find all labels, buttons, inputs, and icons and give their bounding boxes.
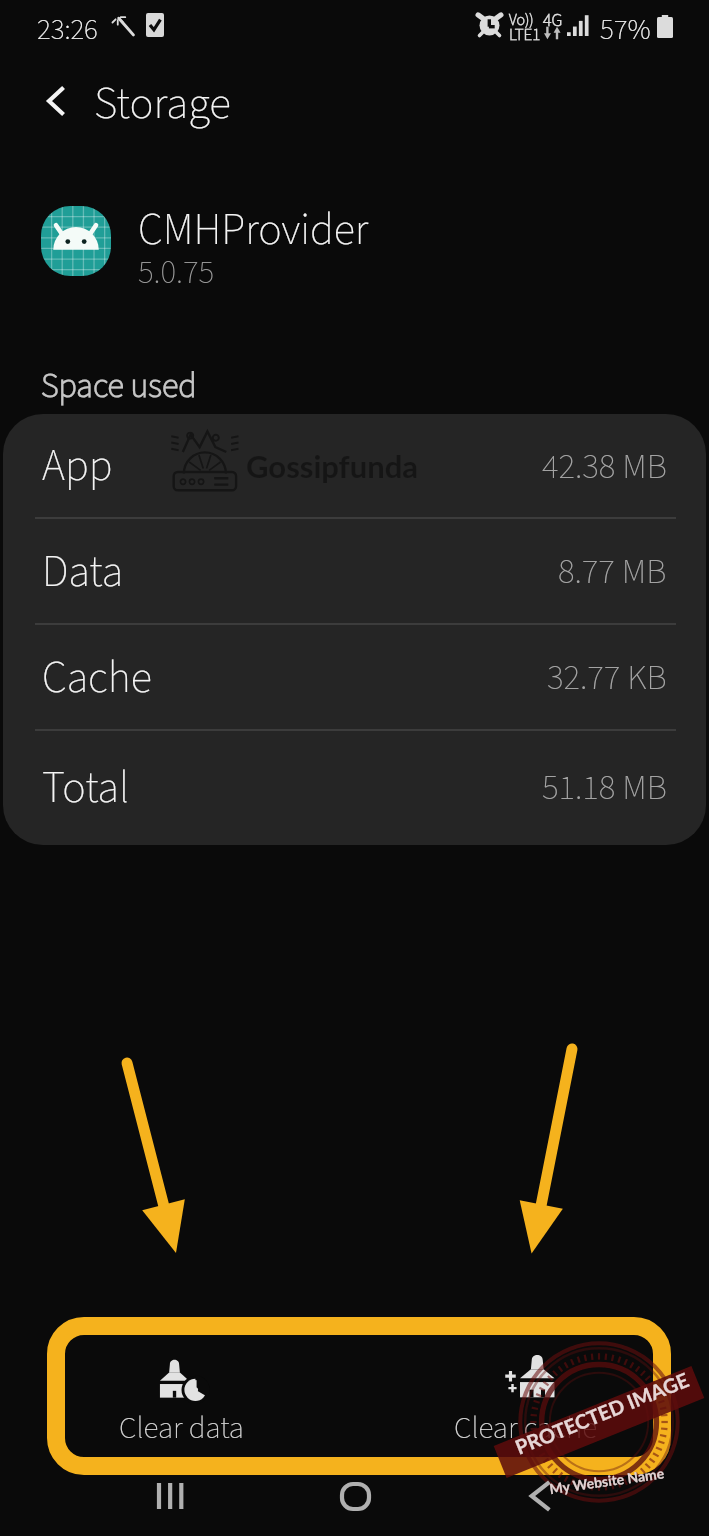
staticText: 51.18 MB <box>542 763 667 813</box>
staticText: My Website Name <box>548 1464 670 1497</box>
staticText: App <box>42 435 113 498</box>
staticText: Storage <box>94 72 231 136</box>
button[interactable]: Total <box>3 731 706 845</box>
staticText: LTE1 <box>509 23 541 47</box>
staticText: 8.77 MB <box>558 547 667 597</box>
staticText: 4G <box>543 8 563 34</box>
button[interactable]: Data <box>3 519 706 625</box>
button[interactable]: Cache <box>3 625 706 731</box>
button[interactable]: Back <box>510 1473 570 1519</box>
staticText: Gossipfunda <box>246 447 418 484</box>
staticText: Space used <box>41 362 197 410</box>
button[interactable]: Back <box>22 71 88 137</box>
staticText: Cache <box>42 647 152 710</box>
staticText: Data <box>42 541 124 604</box>
staticText: Total <box>42 757 130 820</box>
staticText: PROTECTED IMAGE <box>511 1365 697 1459</box>
staticText: Clear cache <box>410 1406 641 1450</box>
staticText: CMHProvider <box>138 199 369 262</box>
staticText: Vo)) <box>509 9 534 32</box>
staticText: 42.38 MB <box>542 442 667 492</box>
staticText: 32.77 KB <box>547 653 667 703</box>
button[interactable]: Recent apps <box>141 1475 201 1517</box>
staticText: Clear data <box>66 1406 297 1450</box>
button[interactable]: Clear data <box>66 1327 297 1467</box>
staticText: 57% <box>600 9 651 50</box>
button[interactable]: Home <box>325 1473 385 1519</box>
button[interactable]: Clear cache <box>410 1327 641 1467</box>
staticText: 23:26 <box>37 9 98 50</box>
staticText: 5.0.75 <box>138 249 215 296</box>
button[interactable]: App <box>3 414 706 519</box>
